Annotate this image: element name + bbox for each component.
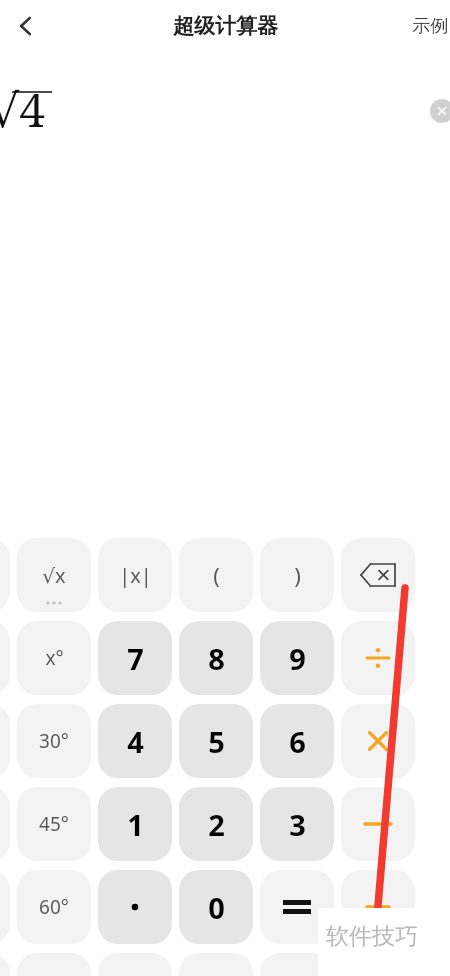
button[interactable]: Minus bbox=[341, 787, 415, 861]
button[interactable]: Clear bbox=[430, 99, 450, 123]
button[interactable] bbox=[260, 953, 334, 976]
staticText: 2 bbox=[208, 805, 225, 844]
staticText: 9 bbox=[289, 639, 306, 678]
button[interactable]: Divide bbox=[341, 621, 415, 695]
button[interactable]: x° bbox=[17, 621, 91, 695]
button[interactable]: 3 bbox=[260, 787, 334, 861]
staticText: 0 bbox=[208, 888, 225, 927]
button[interactable]: sin bbox=[0, 621, 10, 695]
staticText: x° bbox=[45, 645, 64, 671]
staticText: ) bbox=[294, 560, 301, 590]
staticText: 5 bbox=[208, 722, 225, 761]
button[interactable]: √x bbox=[17, 538, 91, 612]
button[interactable]: |x| bbox=[98, 538, 172, 612]
button[interactable]: 45° bbox=[17, 787, 91, 861]
button[interactable]: 9 bbox=[260, 621, 334, 695]
button[interactable]: 60° bbox=[17, 870, 91, 944]
button[interactable]: ( bbox=[179, 538, 253, 612]
staticText: |x| bbox=[119, 562, 152, 589]
staticText: 软件技巧 bbox=[326, 922, 418, 951]
staticText: 60° bbox=[39, 894, 69, 920]
staticText: 6 bbox=[289, 722, 306, 761]
button[interactable]: Plus bbox=[341, 870, 415, 944]
button[interactable]: 7 bbox=[98, 621, 172, 695]
staticText: 3 bbox=[289, 805, 306, 844]
button[interactable]: 6 bbox=[260, 704, 334, 778]
staticText: 4 bbox=[127, 722, 144, 761]
button[interactable]: 示例 bbox=[412, 5, 450, 47]
button[interactable]: cot bbox=[0, 870, 10, 944]
staticText: 30° bbox=[39, 728, 69, 754]
button[interactable]: Backspace bbox=[341, 538, 415, 612]
button[interactable]: 0 bbox=[179, 870, 253, 944]
button[interactable] bbox=[17, 953, 91, 976]
button[interactable]: Back bbox=[0, 4, 52, 48]
button[interactable]: ) bbox=[260, 538, 334, 612]
staticText: √4 bbox=[0, 78, 46, 138]
staticText: 1 bbox=[127, 805, 144, 844]
button[interactable]: 1 bbox=[98, 787, 172, 861]
button[interactable]: cos bbox=[0, 704, 10, 778]
staticText: ( bbox=[213, 560, 220, 590]
staticText: 示例 bbox=[412, 15, 448, 38]
staticText: 45° bbox=[39, 811, 69, 837]
button[interactable]: Decimal point bbox=[98, 870, 172, 944]
button[interactable] bbox=[98, 953, 172, 976]
staticText: 7 bbox=[127, 639, 144, 678]
staticText: 超级计算器 bbox=[173, 13, 278, 39]
staticText: √x bbox=[42, 562, 66, 589]
button[interactable]: 30° bbox=[17, 704, 91, 778]
button[interactable]: 2 bbox=[179, 787, 253, 861]
button[interactable]: Equals bbox=[260, 870, 334, 944]
button[interactable]: Multiply bbox=[341, 704, 415, 778]
button[interactable] bbox=[179, 953, 253, 976]
button[interactable]: x² bbox=[0, 538, 10, 612]
button[interactable] bbox=[0, 953, 10, 976]
staticText: 8 bbox=[208, 639, 225, 678]
button[interactable]: tan bbox=[0, 787, 10, 861]
button[interactable]: 4 bbox=[98, 704, 172, 778]
button[interactable]: 5 bbox=[179, 704, 253, 778]
button[interactable]: 8 bbox=[179, 621, 253, 695]
